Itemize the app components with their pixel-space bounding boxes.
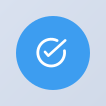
button[interactable]: Task complete [0, 0, 106, 106]
